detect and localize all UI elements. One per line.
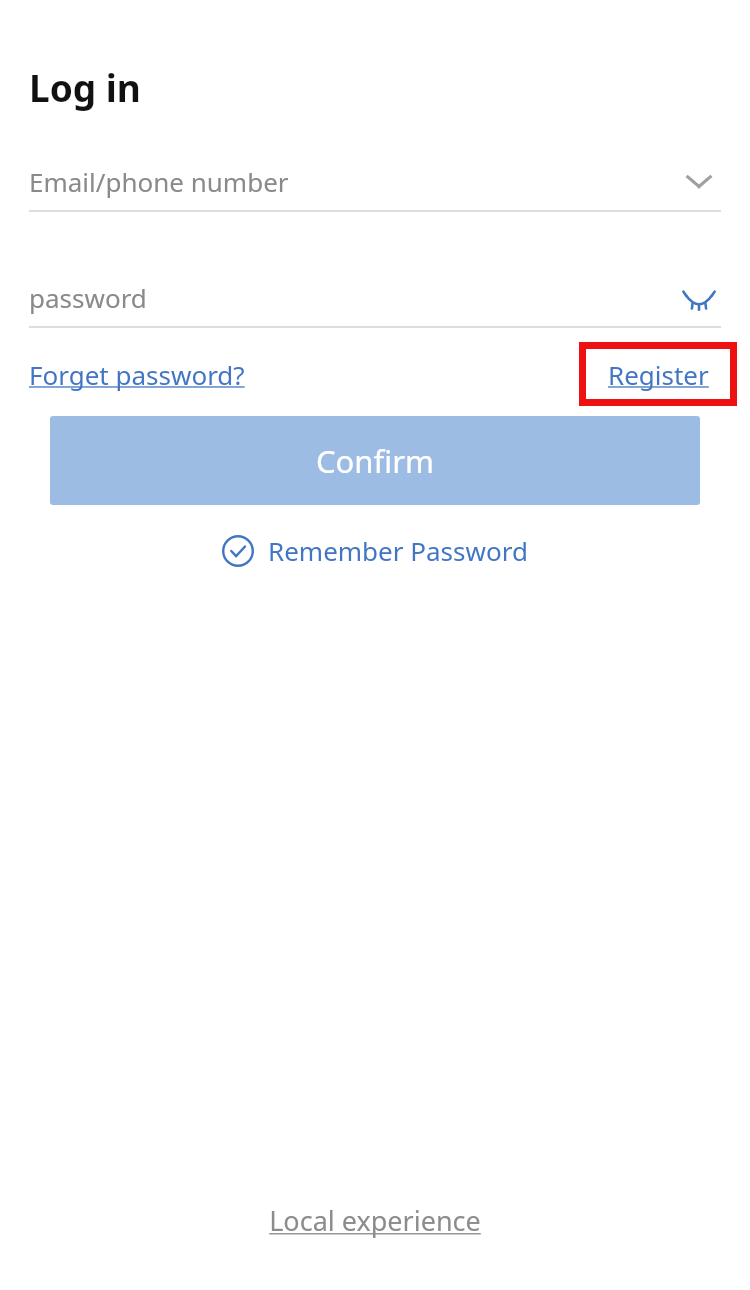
staticText: password: [29, 280, 147, 315]
button[interactable]: Remember Password: [222, 533, 528, 568]
button[interactable]: password: [29, 268, 721, 326]
staticText: Confirm: [316, 440, 434, 482]
staticText: Forget password?: [29, 357, 245, 392]
staticText: Remember Password: [268, 533, 528, 568]
staticText: Email/phone number: [29, 164, 289, 199]
button[interactable]: Local experience: [269, 1202, 481, 1239]
button[interactable]: Email/phone number: [29, 152, 721, 210]
button[interactable]: Show account list: [677, 159, 721, 203]
staticText: Log in: [29, 62, 141, 112]
button[interactable]: Forget password?: [29, 357, 245, 392]
button[interactable]: Confirm: [50, 416, 700, 505]
button[interactable]: Register: [579, 342, 737, 406]
staticText: Register: [608, 357, 709, 392]
button[interactable]: Show password: [677, 275, 721, 319]
staticText: Local experience: [269, 1202, 481, 1239]
